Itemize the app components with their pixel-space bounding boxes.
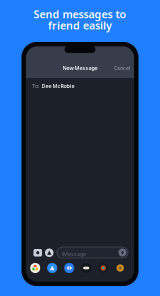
staticText: friend easily bbox=[48, 18, 112, 32]
button[interactable]: Camera roll bbox=[98, 263, 108, 273]
button[interactable]: Memoji bbox=[81, 263, 91, 273]
staticText: Cancel bbox=[114, 64, 130, 72]
staticText: iMessage bbox=[62, 250, 86, 257]
button[interactable]: More apps bbox=[115, 263, 125, 273]
button[interactable]: App Store bbox=[47, 263, 57, 273]
staticText: New Message bbox=[62, 64, 97, 72]
button[interactable]: Photos bbox=[30, 263, 40, 273]
staticText: Send messages to bbox=[33, 7, 126, 21]
button[interactable]: Music bbox=[64, 263, 74, 273]
staticText: To: bbox=[32, 82, 39, 90]
staticText: Dee McRobie bbox=[41, 82, 74, 90]
button[interactable]: Camera bbox=[33, 249, 42, 256]
button[interactable]: Send bbox=[118, 248, 126, 256]
button[interactable]: Cancel bbox=[108, 64, 130, 72]
button[interactable]: Apps bbox=[45, 248, 53, 257]
